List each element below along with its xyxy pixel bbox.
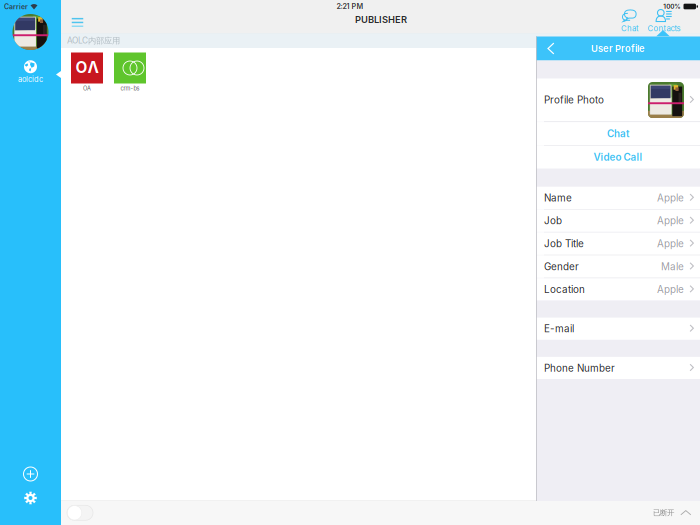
button[interactable]: Add	[15, 465, 45, 483]
button[interactable]: Job	[536, 210, 700, 232]
button[interactable]: Video Call	[536, 146, 700, 169]
staticText: PUBLISHER	[355, 14, 407, 25]
button[interactable]: Profile Photo	[536, 78, 700, 121]
button[interactable]: Gender	[536, 255, 700, 278]
staticText: Phone Number	[544, 362, 615, 374]
staticText: Carrier	[4, 2, 28, 11]
staticText: Apple	[657, 192, 684, 204]
staticText: Contacts	[647, 24, 680, 33]
staticText: 已断开	[653, 508, 674, 517]
staticText: Location	[544, 283, 585, 295]
button[interactable]: Contacts	[645, 9, 683, 33]
button[interactable]: Connection status	[653, 501, 692, 525]
button[interactable]: E-mail	[536, 318, 700, 340]
staticText: Video Call	[593, 151, 642, 163]
staticText: Apple	[657, 215, 684, 227]
staticText: AOLC内部应用	[67, 35, 120, 46]
button[interactable]: Toggle	[67, 505, 93, 520]
button[interactable]: Chat	[536, 122, 700, 145]
staticText: Male	[661, 261, 684, 272]
button[interactable]: aolcidc	[0, 59, 61, 85]
button[interactable]: OΛ	[71, 52, 103, 92]
staticText: Chat	[621, 24, 639, 33]
staticText: User Profile	[591, 43, 645, 54]
staticText: OA	[83, 85, 91, 92]
staticText: Job	[544, 215, 562, 227]
staticText: 2:21 PM	[336, 2, 363, 11]
button[interactable]: Chat	[611, 9, 649, 33]
staticText: Chat	[607, 128, 629, 139]
staticText: Apple	[657, 238, 684, 250]
staticText: 100%	[663, 3, 680, 10]
button[interactable]: Back	[536, 36, 566, 60]
button[interactable]: Menu	[62, 0, 92, 27]
button[interactable]: Name	[536, 187, 700, 209]
button[interactable]: Settings	[15, 489, 45, 507]
staticText: E-mail	[544, 323, 574, 335]
staticText: Job Title	[544, 238, 584, 250]
button[interactable]: Location	[536, 278, 700, 301]
staticText: Profile Photo	[544, 94, 604, 106]
staticText: OΛ	[75, 58, 98, 77]
button[interactable]: Job Title	[536, 232, 700, 255]
staticText: aolcidc	[18, 75, 43, 84]
button[interactable]: crm-bs	[114, 52, 146, 92]
staticText: Name	[544, 192, 572, 204]
staticText: crm-bs	[120, 85, 139, 92]
staticText: Apple	[657, 283, 684, 295]
button[interactable]: Phone Number	[536, 357, 700, 379]
staticText: Gender	[544, 261, 579, 272]
